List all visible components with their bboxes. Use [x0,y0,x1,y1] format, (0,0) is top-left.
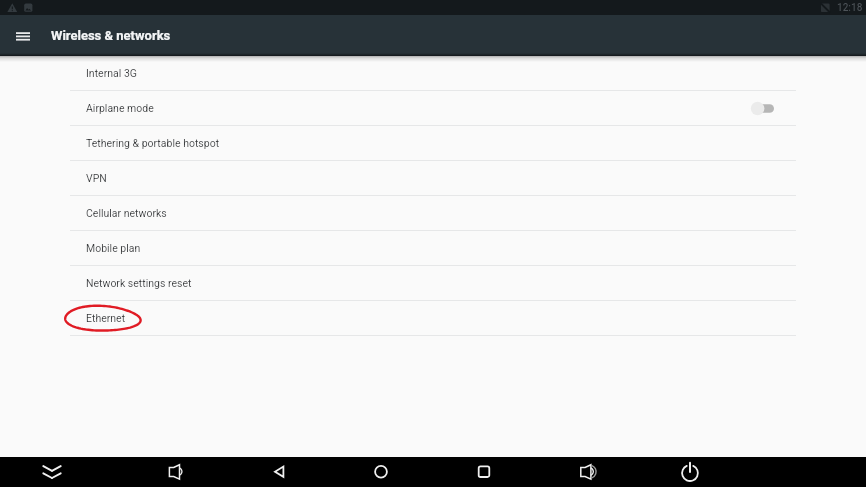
button[interactable]: Cellular networks [0,196,866,231]
staticText: Internal 3G [86,67,137,79]
button[interactable]: Volume down [152,457,198,487]
button[interactable]: Volume up [564,457,610,487]
staticText: Tethering & portable hotspot [86,137,220,149]
button[interactable]: Airplane mode off [748,98,778,120]
button[interactable]: Internal 3G [0,56,866,91]
staticText: Ethernet [86,312,126,324]
staticText: Cellular networks [86,207,167,219]
button[interactable]: Home [358,457,404,487]
button[interactable]: Tethering & portable hotspot [0,126,866,161]
button[interactable]: Ethernet [0,301,866,336]
button[interactable]: Back [256,457,302,487]
button[interactable]: Network settings reset [0,266,866,301]
staticText: Network settings reset [86,277,192,289]
button[interactable]: Airplane mode [0,91,866,126]
staticText: Mobile plan [86,242,141,254]
button[interactable]: Recents [461,457,507,487]
button[interactable]: Open navigation drawer [6,19,40,53]
staticText: 12:18 [837,2,863,14]
button[interactable]: Power [667,457,713,487]
button[interactable]: Hide keyboard [29,457,75,487]
staticText: Wireless & networks [51,28,171,43]
button[interactable]: VPN [0,161,866,196]
staticText: Airplane mode [86,102,154,114]
button[interactable]: Mobile plan [0,231,866,266]
staticText: VPN [86,172,107,184]
